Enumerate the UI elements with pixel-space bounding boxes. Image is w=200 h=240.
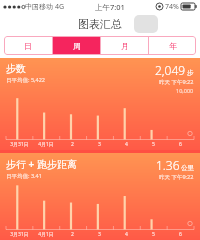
staticText: 2,049 (155, 62, 186, 78)
staticText: 步 (187, 69, 194, 77)
button[interactable]: 月 (101, 36, 148, 55)
staticText: 步数 (6, 62, 26, 75)
staticText: 日 (24, 41, 32, 51)
staticText: 步行 + 跑步距离 (6, 157, 77, 171)
staticText: 昨天 下午9:22 (159, 78, 194, 86)
button[interactable]: 年 (149, 36, 196, 55)
staticText: 4月1日 (38, 231, 54, 238)
staticText: 周 (73, 41, 81, 51)
staticText: 年 (169, 41, 177, 51)
staticText: 5 (152, 141, 155, 148)
staticText: 74% (165, 2, 179, 12)
staticText: 4G (55, 2, 65, 12)
staticText: 中国移动 (25, 2, 53, 11)
button[interactable]: 周 (53, 36, 100, 55)
staticText: 2 (71, 231, 74, 238)
staticText: 5 (152, 231, 155, 238)
staticText: 昨天 下午9:22 (159, 173, 194, 181)
staticText: 日平均值: 3.41 (6, 172, 42, 180)
staticText: 公里 (181, 164, 194, 172)
staticText: 图表汇总 (78, 17, 122, 31)
button[interactable]: 步数 (0, 58, 200, 150)
staticText: 3 (98, 141, 101, 148)
staticText: 4月1日 (38, 141, 54, 148)
staticText: 6 (179, 141, 182, 148)
staticText: 3月31日 (10, 141, 29, 148)
staticText: 3 (98, 231, 101, 238)
staticText: 日平均值: 5,422 (6, 76, 45, 84)
staticText: 10,000 (176, 87, 194, 94)
staticText: 1.36 (156, 157, 180, 173)
staticText: 6 (179, 231, 182, 238)
button[interactable]: 日 (4, 36, 52, 55)
button[interactable]: 编辑 (134, 15, 158, 33)
staticText: 2 (71, 141, 74, 148)
staticText: 上午7:01 (95, 2, 125, 12)
staticText: 4 (125, 141, 128, 148)
staticText: 月 (121, 41, 129, 51)
button[interactable]: 步行 + 跑步距离 (0, 153, 200, 240)
staticText: 4 (125, 231, 128, 238)
staticText: 3月31日 (10, 231, 29, 238)
